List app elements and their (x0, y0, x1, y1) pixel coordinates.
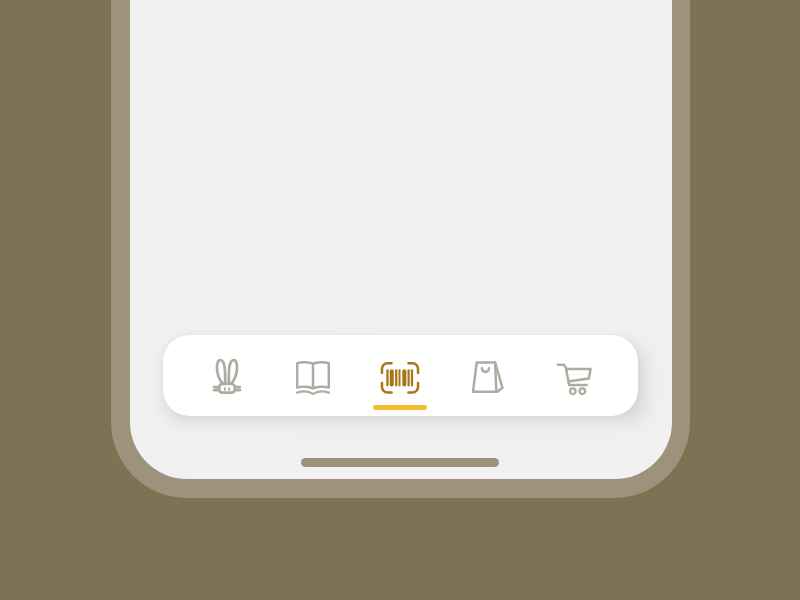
button[interactable]: Bag (443, 335, 530, 416)
button[interactable]: Cart (530, 335, 617, 416)
button[interactable]: Pets (184, 335, 270, 416)
button[interactable]: Book (270, 335, 356, 416)
button[interactable]: Scan barcode (356, 335, 443, 416)
